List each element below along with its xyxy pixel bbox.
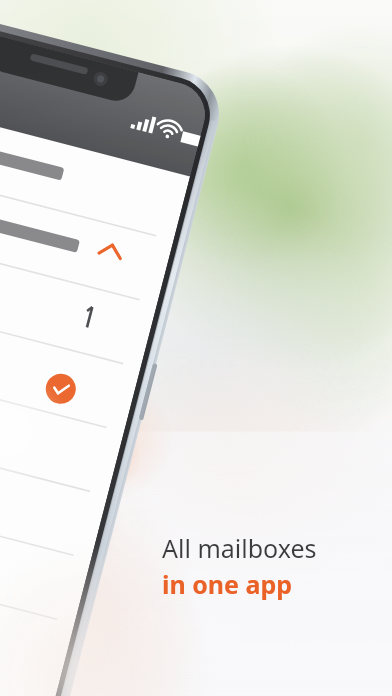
staticText: in one app [162,567,293,601]
button[interactable]: All mailboxes [162,531,323,599]
staticText: All mailboxes [162,531,317,565]
